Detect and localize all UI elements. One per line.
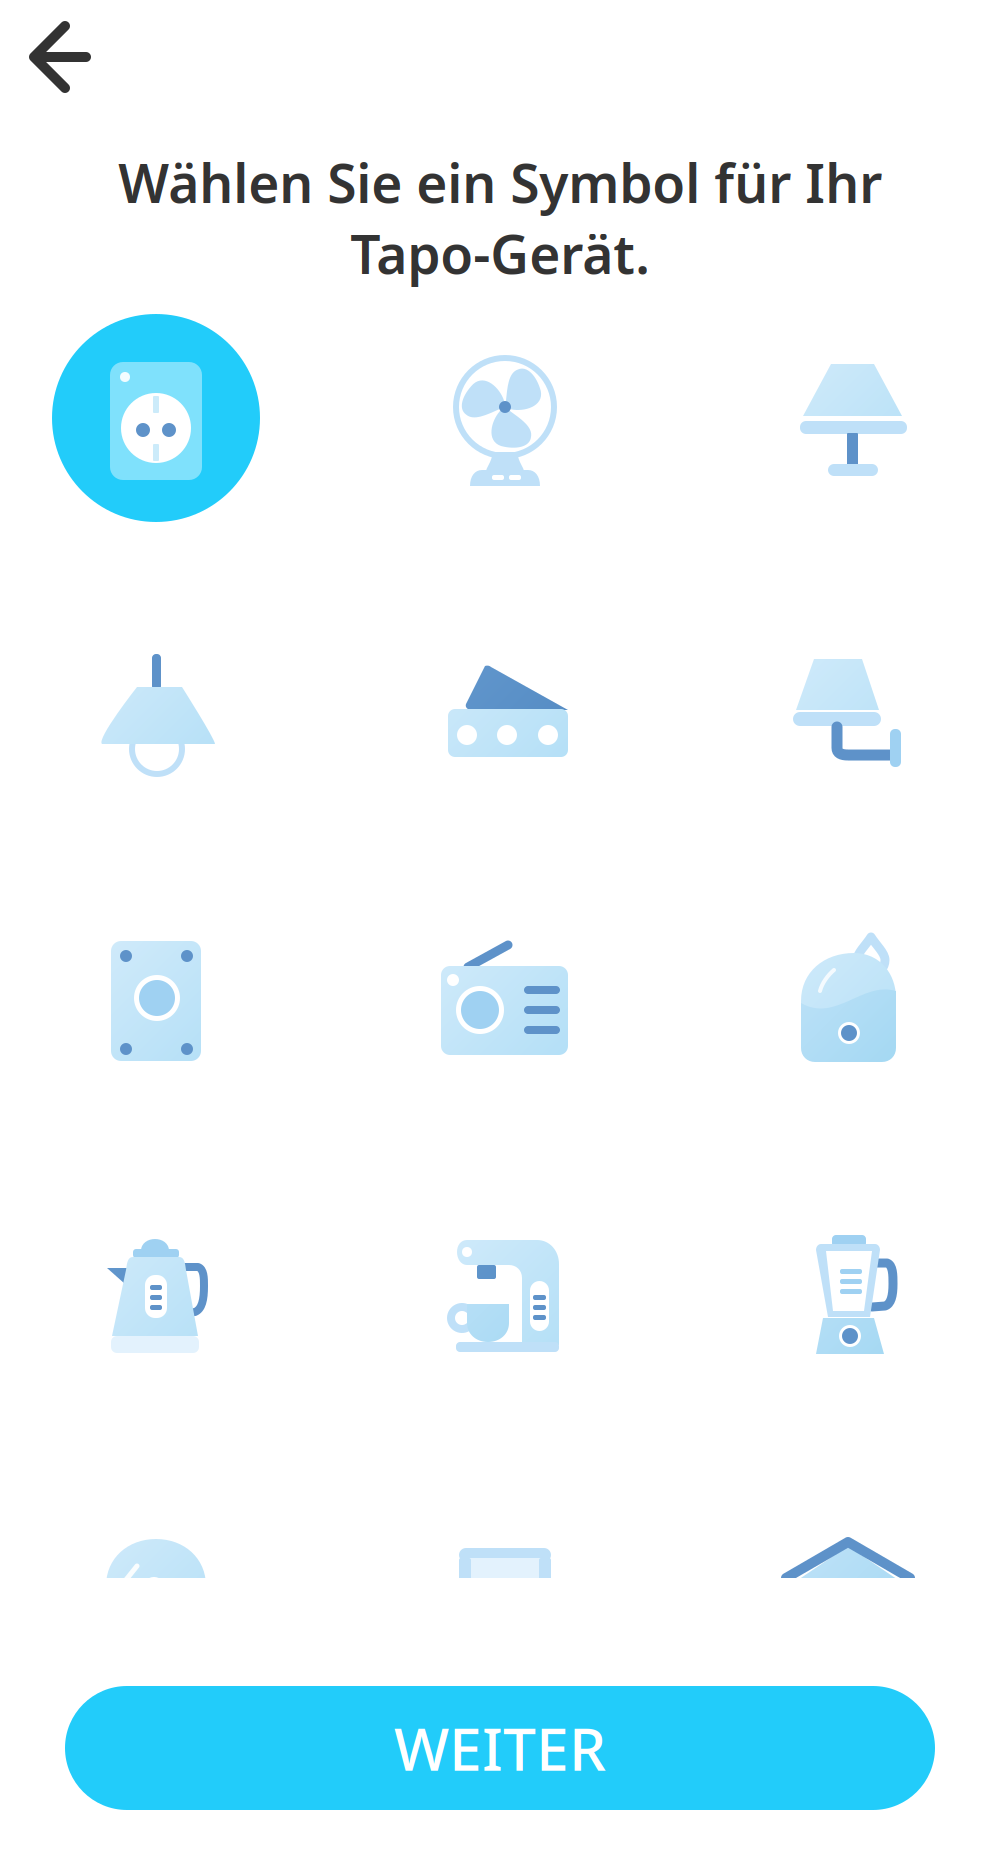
button[interactable]: Gerätesymbol	[52, 314, 260, 522]
button[interactable]: WEITER	[65, 1686, 935, 1810]
button[interactable]: Gerätesymbol	[396, 1190, 604, 1398]
button[interactable]: Gerätesymbol	[52, 606, 260, 814]
button[interactable]: Gerätesymbol	[396, 314, 604, 522]
button[interactable]: Gerätesymbol	[396, 1482, 604, 1690]
button[interactable]: Gerätesymbol	[396, 606, 604, 814]
button[interactable]: Zurück	[17, 6, 119, 108]
button[interactable]: Gerätesymbol	[744, 1190, 952, 1398]
button[interactable]: Gerätesymbol	[744, 898, 952, 1106]
staticText: WEITER	[394, 1709, 606, 1787]
button[interactable]: Gerätesymbol	[744, 314, 952, 522]
button[interactable]: Gerätesymbol	[52, 1190, 260, 1398]
button[interactable]: Gerätesymbol	[396, 898, 604, 1106]
button[interactable]: Gerätesymbol	[52, 898, 260, 1106]
button[interactable]: Gerätesymbol	[744, 1482, 952, 1690]
staticText: Wählen Sie ein Symbol für Ihr Tapo-Gerät…	[118, 147, 882, 289]
button[interactable]: Gerätesymbol	[52, 1482, 260, 1690]
button[interactable]: Gerätesymbol	[744, 606, 952, 814]
